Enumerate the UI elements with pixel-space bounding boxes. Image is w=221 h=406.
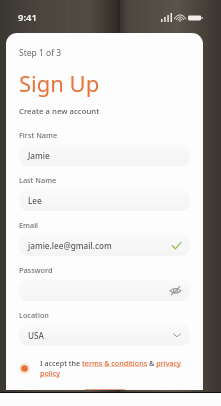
staticText: Last Name [19, 175, 57, 185]
staticText: USA [28, 330, 44, 341]
button[interactable] [19, 389, 190, 390]
button[interactable]: USA [19, 324, 190, 346]
staticText: jamie.lee@gmail.com [28, 240, 112, 251]
button[interactable]: jamie.lee@gmail.com [19, 234, 190, 256]
staticText: I accept the terms & conditions & privac… [40, 358, 190, 378]
other: Battery [188, 14, 203, 22]
staticText: First Name [19, 130, 58, 140]
other: Valid [171, 240, 182, 251]
button[interactable]: Lee [19, 189, 190, 211]
staticText: Step 1 of 3 [19, 47, 62, 59]
staticText: 9:41 [18, 11, 37, 24]
staticText: Sign Up [19, 68, 100, 98]
staticText: Create a new account [19, 106, 100, 117]
button[interactable]: Show password [19, 279, 190, 301]
staticText: Password [19, 265, 53, 275]
staticText: Location [19, 310, 49, 320]
button[interactable]: Show password [169, 284, 182, 297]
staticText: Email [19, 220, 39, 230]
other: Wi-Fi [175, 13, 185, 22]
button[interactable]: I accept the terms & conditions & privac… [19, 358, 190, 378]
staticText: Jamie [28, 150, 50, 161]
other: Cellular signal [161, 13, 172, 22]
other: Open list [172, 330, 182, 340]
staticText: Lee [28, 195, 42, 206]
button[interactable]: Jamie [19, 144, 190, 166]
